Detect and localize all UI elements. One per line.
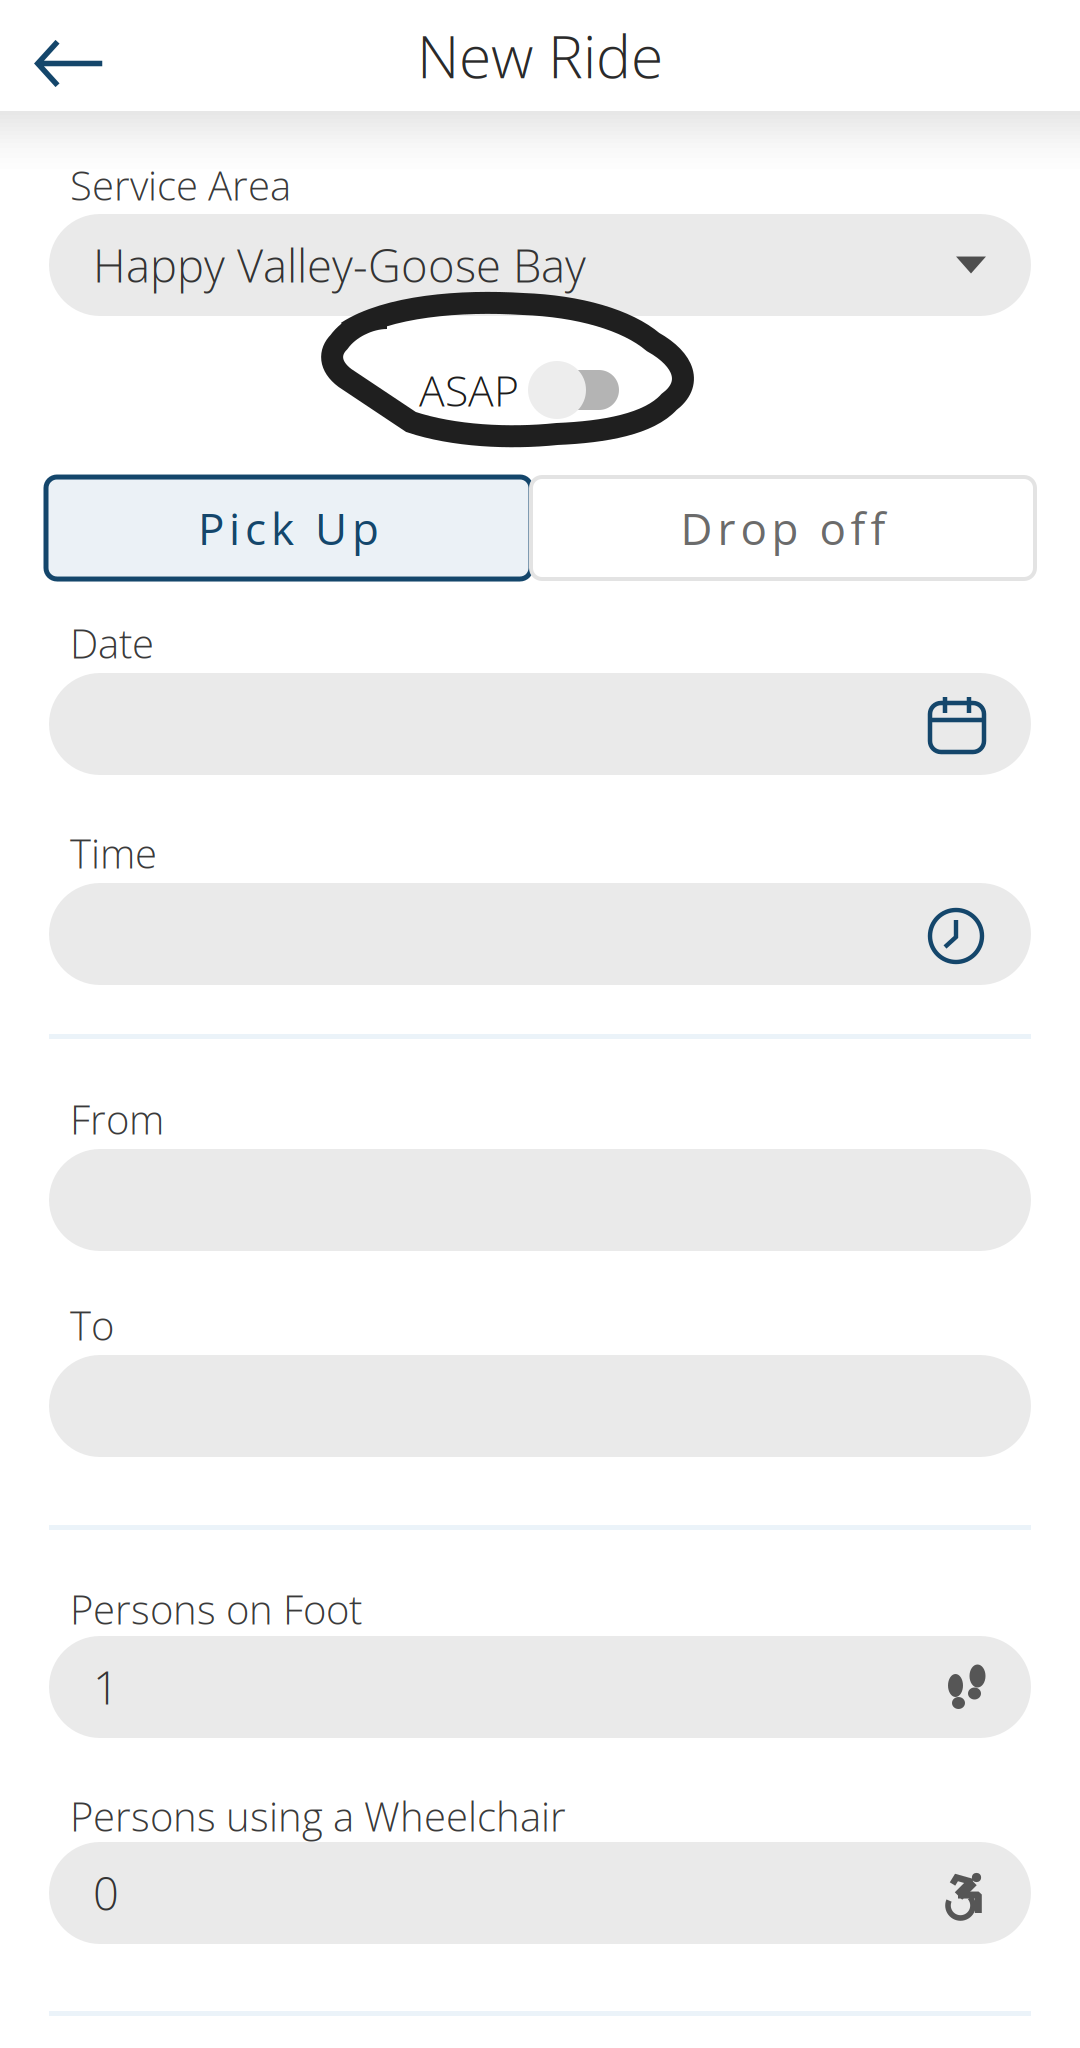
button[interactable] xyxy=(49,673,1031,775)
button[interactable]: 0 xyxy=(49,1842,1031,1944)
button[interactable]: ASAP xyxy=(0,361,1080,419)
button[interactable] xyxy=(49,883,1031,985)
staticText: 1 xyxy=(93,1656,119,1718)
staticText: Happy Valley-Goose Bay xyxy=(93,234,586,296)
button[interactable]: Back xyxy=(0,0,137,111)
button[interactable]: Pick Up xyxy=(46,477,531,579)
staticText: Drop off xyxy=(680,498,885,558)
button[interactable]: Happy Valley-Goose Bay xyxy=(49,214,1031,316)
button[interactable]: Drop off xyxy=(531,477,1035,579)
staticText: 0 xyxy=(93,1862,119,1924)
button[interactable] xyxy=(49,1355,1031,1457)
staticText: Service Area xyxy=(70,158,291,212)
staticText: Pick Up xyxy=(198,498,379,558)
staticText: Time xyxy=(70,826,157,880)
staticText: Persons using a Wheelchair xyxy=(70,1789,566,1843)
staticText: From xyxy=(70,1092,164,1146)
button[interactable]: 1 xyxy=(49,1636,1031,1738)
button[interactable] xyxy=(49,1149,1031,1251)
staticText: ASAP xyxy=(419,361,519,419)
staticText: New Ride xyxy=(417,16,663,95)
staticText: Persons on Foot xyxy=(70,1582,362,1636)
staticText: To xyxy=(70,1298,114,1352)
staticText: Date xyxy=(70,616,154,670)
